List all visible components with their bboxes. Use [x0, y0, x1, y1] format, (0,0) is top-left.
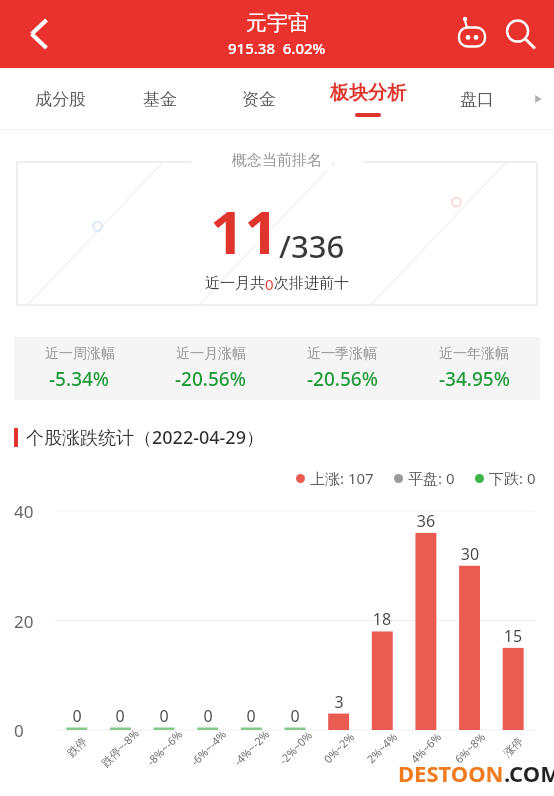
button[interactable]: AI assistant [448, 10, 496, 58]
button[interactable]: 近一季涨幅 [276, 345, 408, 392]
staticText: -4%~-2% [230, 726, 273, 769]
staticText: 915.38 6.02% [228, 38, 326, 58]
staticText: 盘口 [460, 89, 494, 110]
button[interactable]: 上涨: 107 [296, 468, 374, 488]
button[interactable]: 下跌: 0 [475, 468, 536, 488]
staticText: 个股涨跌统计（2022-04-29） [26, 425, 264, 450]
staticText: 0 [151, 705, 177, 727]
staticText: 平盘: 0 [408, 468, 455, 488]
staticText: 概念当前排名 [232, 151, 322, 170]
staticText: 跌停 [64, 734, 90, 760]
staticText: 40 [14, 500, 34, 523]
staticText: 近一周涨幅 [45, 345, 115, 363]
staticText: 15 [500, 625, 526, 647]
staticText: 跌停~-8% [98, 725, 142, 770]
staticText: 元宇宙 [246, 10, 309, 36]
staticText: 0 [195, 705, 221, 727]
staticText: 30 [457, 543, 483, 565]
staticText: -20.56% [175, 366, 246, 392]
staticText: 6%~8% [451, 729, 489, 766]
button[interactable]: 近一周涨幅 [14, 345, 145, 392]
staticText: 11 [210, 190, 279, 272]
staticText: .COM [504, 758, 554, 788]
staticText: 3 [326, 691, 352, 713]
staticText: -8%~-6% [143, 726, 186, 769]
staticText: /336 [279, 225, 345, 267]
staticText: 近一年涨幅 [439, 345, 509, 363]
button[interactable]: 板块分析 [308, 68, 427, 130]
staticText: 成分股 [35, 89, 86, 110]
button[interactable]: 成分股 [10, 68, 110, 130]
staticText: 板块分析 [330, 81, 406, 105]
button[interactable]: 平盘: 0 [394, 468, 455, 488]
button[interactable]: 近一年涨幅 [408, 345, 540, 392]
button[interactable]: Search [496, 10, 544, 58]
staticText: -6%~-4% [187, 726, 230, 769]
staticText: 资金 [242, 89, 276, 110]
button[interactable]: 近一月涨幅 [145, 345, 276, 392]
staticText: 上涨: 107 [310, 468, 374, 488]
staticText: 0 [282, 705, 308, 727]
staticText: 近一月涨幅 [176, 345, 246, 363]
staticText: 近一季涨幅 [307, 345, 377, 363]
staticText: -20.56% [307, 366, 378, 392]
staticText: 0 [238, 705, 264, 727]
staticText: -34.95% [439, 366, 510, 392]
button[interactable]: 基金 [110, 68, 209, 130]
button[interactable]: Back [14, 10, 62, 58]
staticText: -2%~0% [276, 728, 315, 767]
button[interactable]: 资金 [209, 68, 308, 130]
staticText: -5.34% [49, 366, 110, 392]
staticText: 涨停 [500, 734, 526, 760]
staticText: 0 [64, 705, 90, 727]
staticText: 0 [14, 719, 24, 742]
staticText: 0%~2% [320, 729, 358, 766]
staticText: DESTOON [398, 758, 504, 788]
staticText: 0 [265, 274, 274, 294]
staticText: 20 [14, 610, 34, 633]
staticText: 2%~4% [363, 729, 401, 766]
staticText: 下跌: 0 [489, 468, 536, 488]
staticText: 次排进前十 [274, 274, 349, 293]
button[interactable]: 盘口 [427, 68, 526, 130]
staticText: 0 [107, 705, 133, 727]
staticText: 近一月共 [205, 274, 265, 293]
staticText: 4%~6% [407, 729, 445, 766]
staticText: 36 [413, 510, 439, 532]
staticText: 18 [369, 608, 395, 630]
staticText: 基金 [143, 89, 177, 110]
